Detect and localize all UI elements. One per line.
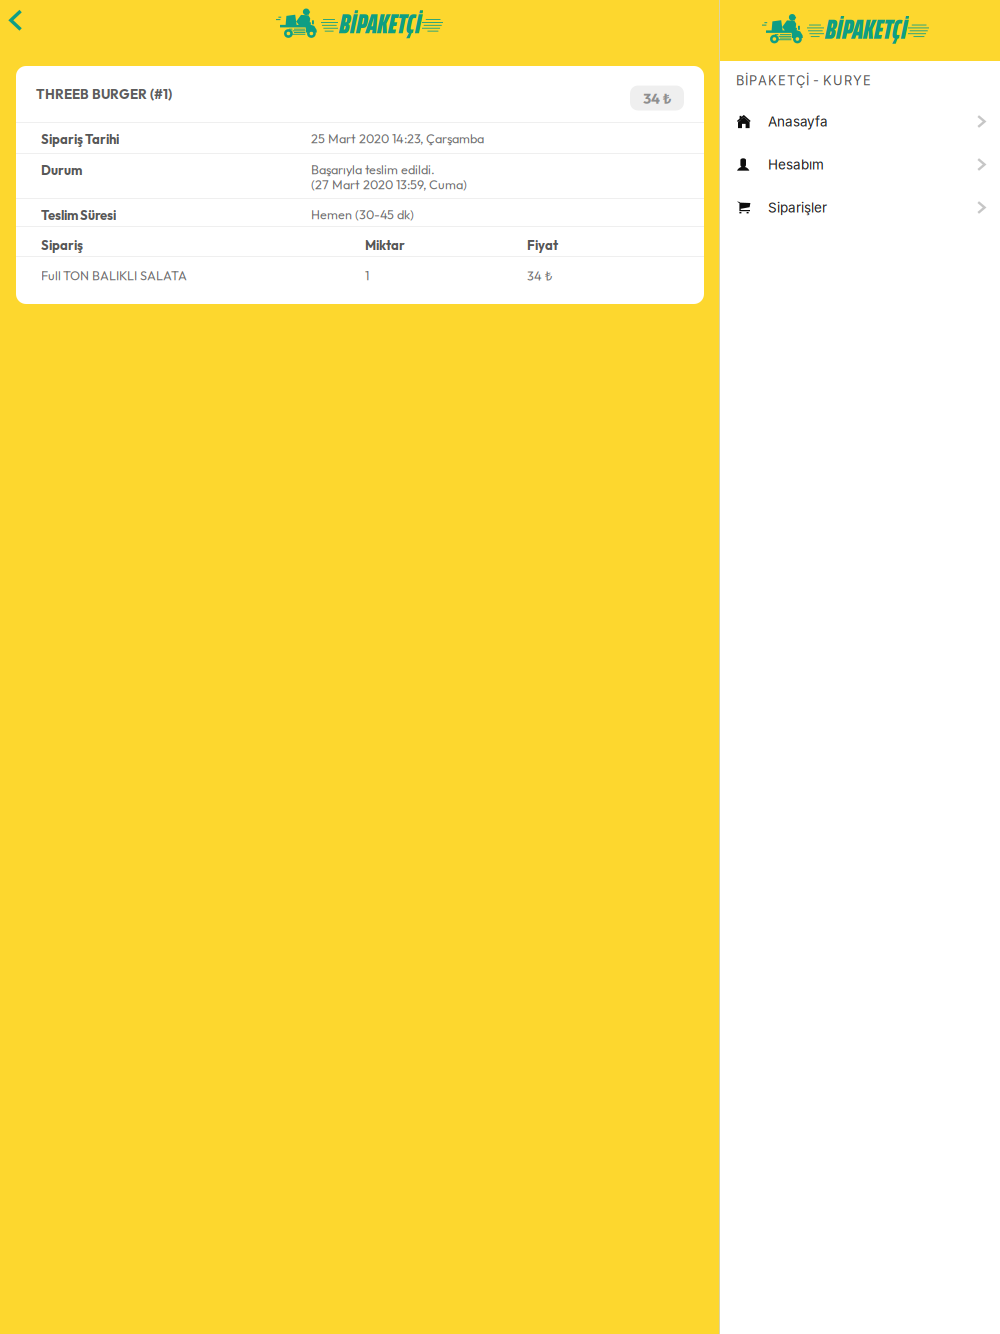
staticText: 25 Mart 2020 14:23, Çarşamba: [311, 130, 484, 146]
staticText: Durum: [41, 162, 82, 178]
staticText: 1: [365, 268, 369, 284]
button[interactable]: Hesabım: [720, 143, 1000, 186]
staticText: B İ P A K E T Ç İ - K U R Y E: [736, 73, 871, 88]
staticText: BİPAKETÇİ: [825, 8, 907, 50]
staticText: Teslim Süresi: [41, 207, 116, 223]
staticText: 34 ₺: [527, 267, 552, 284]
button[interactable]: Anasayfa: [720, 100, 1000, 143]
staticText: Anasayfa: [768, 113, 828, 130]
button[interactable]: Siparişler: [720, 186, 1000, 229]
staticText: THREEB BURGER (#1): [36, 86, 172, 102]
staticText: (27 Mart 2020 13:59, Cuma): [311, 176, 467, 192]
staticText: Hesabım: [768, 156, 824, 173]
staticText: Hemen (30-45 dk): [311, 206, 414, 222]
staticText: Sipariş: [41, 237, 83, 253]
staticText: Sipariş Tarihi: [41, 131, 119, 147]
button[interactable]: 34 ₺: [630, 77, 684, 110]
staticText: Başarıyla teslim edildi.: [311, 161, 435, 177]
staticText: BİPAKETÇİ: [339, 3, 421, 45]
staticText: 34 ₺: [643, 88, 671, 108]
staticText: Siparişler: [768, 199, 827, 216]
staticText: Full TON BALIKLI SALATA: [41, 268, 187, 284]
staticText: Fiyat: [527, 237, 558, 253]
staticText: Miktar: [365, 237, 405, 253]
button[interactable]: Geri: [0, 0, 36, 61]
